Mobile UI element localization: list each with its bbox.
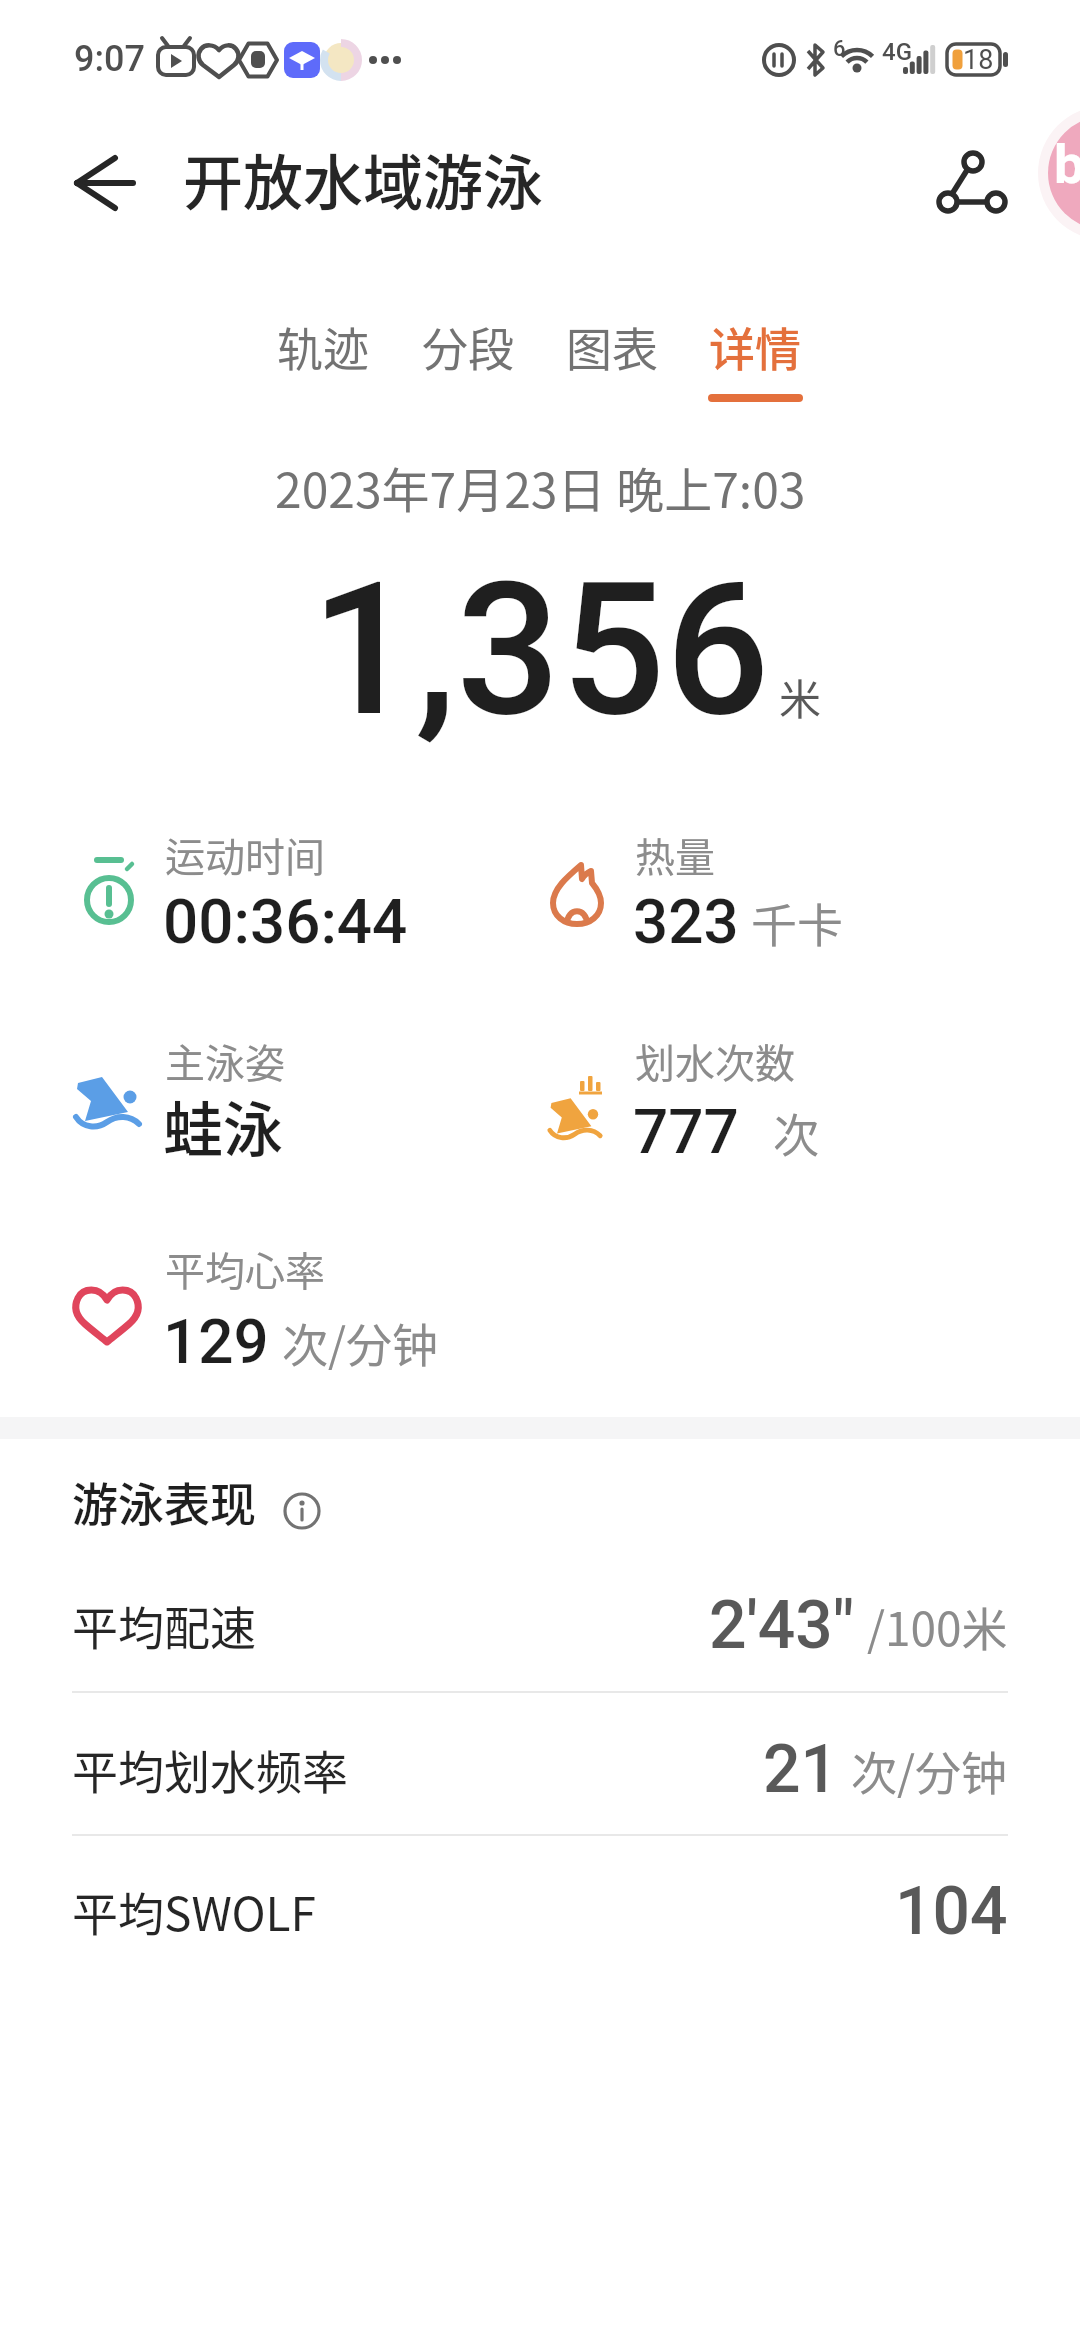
staticText: 游泳表现: [72, 1468, 256, 1535]
staticText: 平均划水频率: [72, 1736, 348, 1803]
staticText: b: [1054, 133, 1080, 196]
staticText: 千卡: [751, 889, 843, 956]
staticText: 2'43": [709, 1587, 855, 1664]
staticText: 米: [779, 666, 822, 727]
staticText: 开放水域游泳: [183, 135, 543, 222]
staticText: 00:36:44: [163, 885, 408, 958]
staticText: 详情: [709, 313, 801, 380]
staticText: 21: [763, 1731, 839, 1808]
staticText: 热量: [635, 826, 715, 884]
staticText: 4G: [882, 38, 912, 66]
staticText: 平均心率: [165, 1240, 325, 1298]
button[interactable]: [546, 300, 681, 410]
staticText: 323: [633, 885, 739, 958]
staticText: 1,356: [311, 542, 770, 758]
staticText: 轨迹: [277, 313, 369, 380]
staticText: 蛙泳: [163, 1082, 283, 1169]
staticText: 平均配速: [72, 1592, 256, 1659]
button[interactable]: 平均划水频率: [0, 1729, 1080, 1809]
staticText: 9:07: [74, 38, 145, 80]
staticText: 图表: [566, 313, 658, 380]
button[interactable]: 平均配速: [0, 1585, 1080, 1665]
staticText: 分段: [422, 313, 514, 380]
button[interactable]: [60, 140, 150, 230]
staticText: 次/分钟: [851, 1737, 1008, 1804]
button[interactable]: 平均SWOLF: [0, 1871, 1080, 1951]
staticText: 129: [163, 1305, 269, 1378]
button[interactable]: [257, 300, 392, 410]
staticText: 次/分钟: [282, 1309, 439, 1376]
button[interactable]: [689, 300, 824, 410]
staticText: 运动时间: [165, 826, 325, 884]
staticText: 2023年7月23日 晚上7:03: [275, 452, 806, 522]
staticText: 777: [633, 1095, 739, 1168]
staticText: 划水次数: [635, 1032, 795, 1090]
staticText: /100米: [867, 1593, 1008, 1660]
staticText: 6: [833, 36, 846, 62]
button[interactable]: [920, 135, 1020, 230]
staticText: 18: [963, 44, 994, 76]
staticText: 主泳姿: [165, 1032, 285, 1090]
staticText: 平均SWOLF: [72, 1878, 316, 1945]
staticText: 104: [895, 1873, 1008, 1950]
staticText: 次: [773, 1099, 819, 1166]
button[interactable]: [402, 300, 537, 410]
